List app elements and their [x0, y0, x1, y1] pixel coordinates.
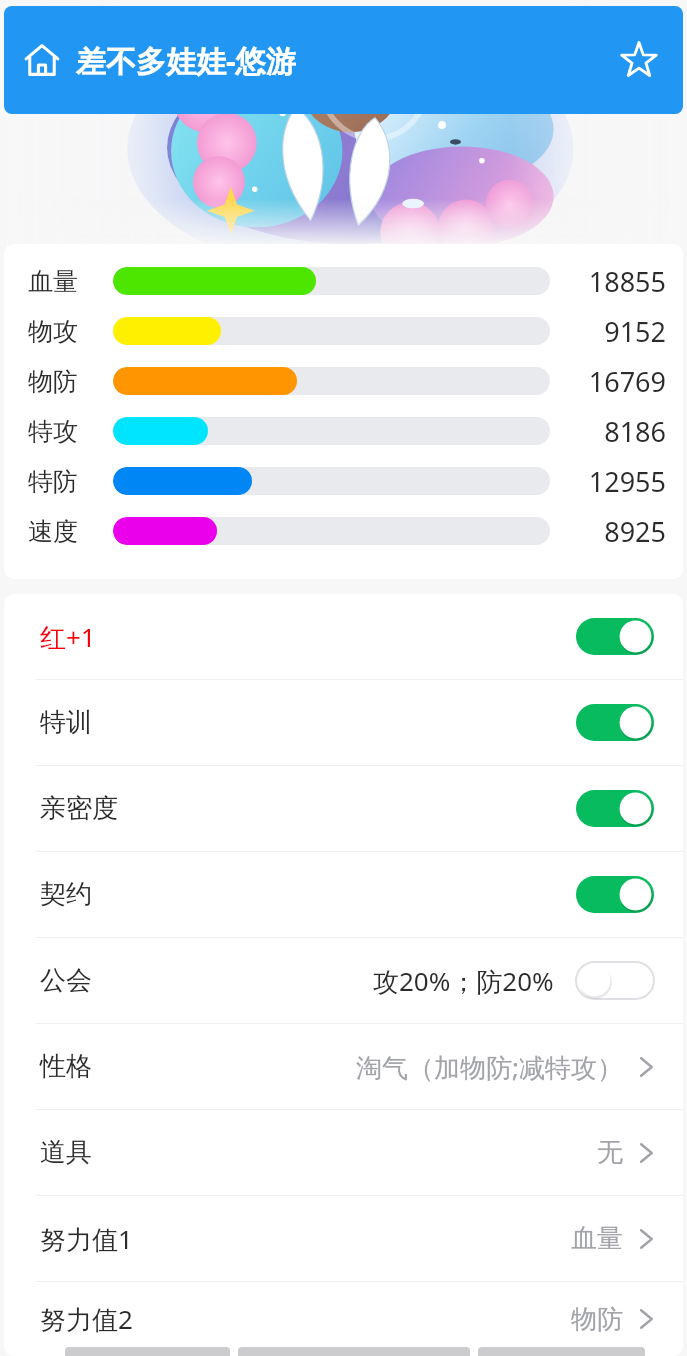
button[interactable]: On: [576, 790, 654, 827]
button[interactable]: Favorite: [613, 34, 665, 86]
staticText: 契约: [40, 878, 92, 911]
staticText: 道具: [40, 1136, 92, 1169]
staticText: 差不多娃娃-悠游: [76, 40, 296, 81]
button[interactable]: On: [576, 618, 654, 655]
staticText: 性格: [40, 1050, 92, 1083]
staticText: 9152: [604, 313, 666, 350]
staticText: 特训: [40, 706, 92, 739]
staticText: 特防: [28, 466, 78, 497]
staticText: 物防: [28, 366, 78, 397]
button[interactable]: 特训: [4, 680, 683, 765]
staticText: 12955: [588, 463, 666, 500]
staticText: 物攻: [28, 316, 78, 347]
button[interactable]: 性格: [4, 1024, 683, 1109]
button[interactable]: 红+1: [4, 594, 683, 679]
button[interactable]: 契约: [4, 852, 683, 937]
staticText: 攻20%；防20%: [373, 963, 554, 999]
staticText: 血量: [571, 1222, 623, 1255]
staticText: 物防: [571, 1303, 623, 1336]
staticText: 16769: [588, 363, 666, 400]
staticText: 血量: [28, 266, 78, 297]
staticText: 8186: [604, 413, 666, 450]
button[interactable]: 亲密度: [4, 766, 683, 851]
button[interactable]: Off: [576, 962, 654, 999]
staticText: 红+1: [40, 619, 96, 655]
staticText: 亲密度: [40, 792, 118, 825]
staticText: 特攻: [28, 416, 78, 447]
button[interactable]: 努力值2: [4, 1282, 683, 1356]
staticText: 努力值2: [40, 1301, 133, 1337]
button[interactable]: 公会: [4, 938, 683, 1023]
button[interactable]: On: [576, 704, 654, 741]
button[interactable]: On: [576, 876, 654, 913]
staticText: 努力值1: [40, 1221, 133, 1257]
staticText: 8925: [604, 513, 666, 550]
staticText: 无: [597, 1136, 623, 1169]
staticText: 淘气（加物防;减特攻）: [356, 1049, 623, 1085]
button[interactable]: 努力值1: [4, 1196, 683, 1281]
button[interactable]: 道具: [4, 1110, 683, 1195]
staticText: 速度: [28, 516, 78, 547]
button[interactable]: Home: [18, 36, 66, 84]
staticText: 公会: [40, 964, 92, 997]
staticText: 18855: [588, 263, 666, 300]
